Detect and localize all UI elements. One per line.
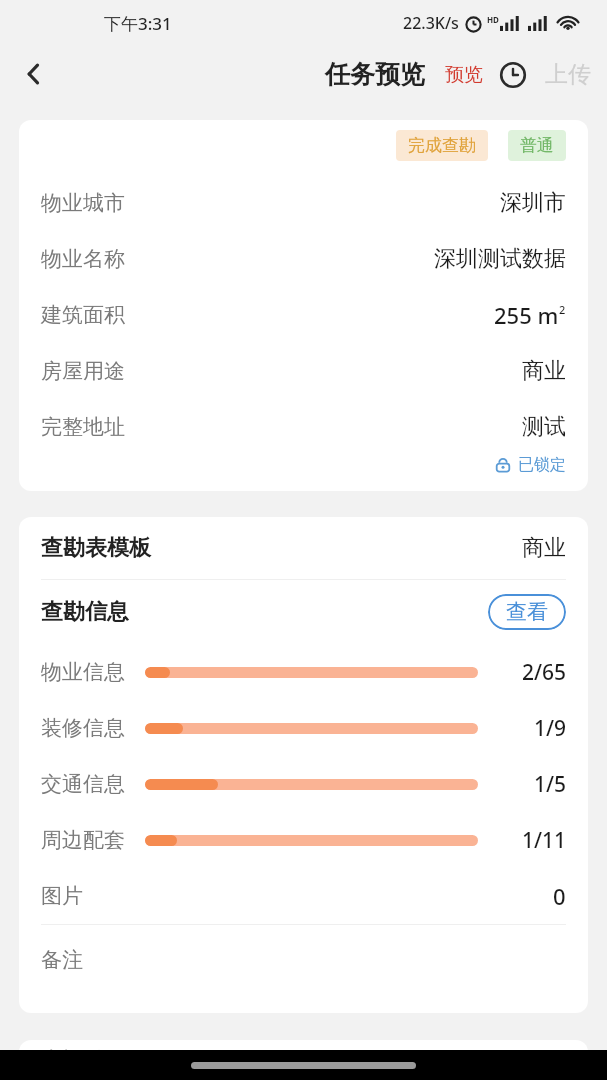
staticText: 房屋用途	[41, 358, 125, 384]
staticText: 完成查勘	[408, 135, 476, 156]
button[interactable]: 装修信息	[19, 700, 588, 756]
staticText: 255 m	[494, 300, 559, 330]
staticText: 1/5	[494, 770, 566, 799]
staticText: 物业信息	[41, 659, 125, 685]
staticText: 周边配套	[41, 827, 125, 853]
staticText: 普通	[520, 135, 554, 156]
staticText: 深圳测试数据	[434, 245, 566, 273]
button[interactable]: 物业名称	[19, 231, 588, 287]
button[interactable]: 预览	[443, 59, 485, 91]
button[interactable]: 交通信息	[19, 756, 588, 812]
staticText: 22.3K/s	[403, 12, 459, 34]
button[interactable]: 周边配套	[19, 812, 588, 868]
staticText: 商业	[522, 357, 566, 385]
button[interactable]: 房屋用途	[19, 343, 588, 399]
staticText: 查看	[506, 599, 548, 625]
staticText: 装修信息	[41, 715, 125, 741]
button[interactable]: 物业城市	[19, 175, 588, 231]
staticText: 已锁定	[518, 455, 566, 475]
staticText: 上门时间	[41, 1047, 125, 1073]
staticText: 图片	[41, 883, 83, 909]
staticText: 完整地址	[41, 414, 125, 440]
staticText: 备注	[41, 947, 83, 973]
button[interactable]: 完整地址	[19, 399, 588, 455]
button[interactable]: 物业信息	[19, 644, 588, 700]
staticText: 深圳市	[500, 189, 566, 217]
staticText: 商业	[522, 534, 566, 562]
button[interactable]: 建筑面积	[19, 287, 588, 343]
staticText: 查勘信息	[41, 598, 129, 626]
button[interactable]: History	[495, 57, 531, 93]
staticText: 建筑面积	[41, 302, 125, 328]
button[interactable]: Back	[10, 50, 58, 98]
button[interactable]: 上传	[543, 56, 593, 93]
staticText: 测试	[522, 413, 566, 441]
staticText: 1/11	[494, 826, 566, 855]
staticText: 任务预览	[325, 59, 425, 90]
staticText: 上传	[545, 60, 591, 89]
staticText: 查勘表模板	[41, 534, 151, 562]
button[interactable]: 已锁定	[19, 455, 566, 475]
staticText: 物业名称	[41, 246, 125, 272]
staticText: 1/9	[494, 714, 566, 743]
button[interactable]: 备注	[19, 925, 588, 1013]
staticText: 2	[559, 302, 566, 317]
button[interactable]: 查看	[488, 594, 566, 630]
staticText: 下午3:31	[104, 12, 172, 35]
button[interactable]: 图片	[19, 868, 588, 924]
button[interactable]: 查勘表模板	[19, 517, 588, 579]
staticText: 物业城市	[41, 190, 125, 216]
staticText: 交通信息	[41, 771, 125, 797]
staticText: 预览	[445, 63, 483, 87]
staticText: 2/65	[494, 658, 566, 687]
staticText: 0	[553, 881, 566, 911]
staticText: HD	[487, 14, 499, 25]
button[interactable]: 上门时间	[19, 1040, 588, 1080]
